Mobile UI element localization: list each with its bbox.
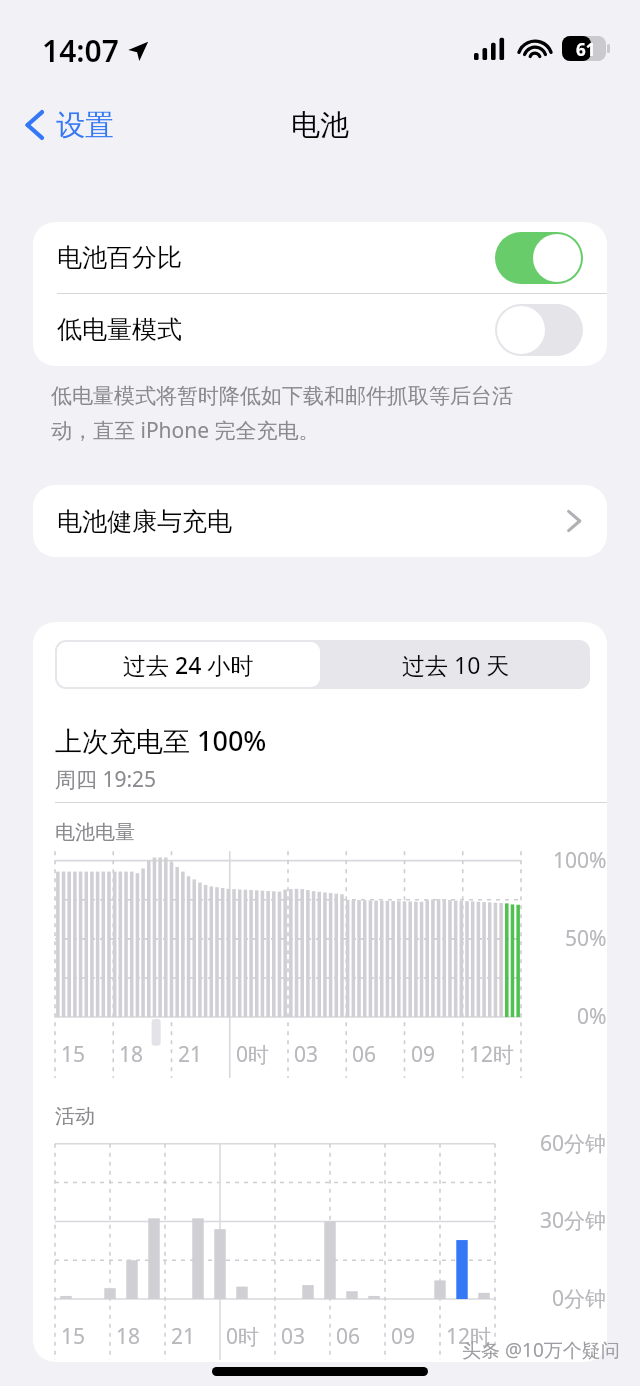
button[interactable]: 低电量模式	[33, 294, 607, 365]
staticText: 12时	[446, 1322, 492, 1351]
staticText: 15	[61, 1322, 86, 1351]
staticText: 过去 10 天	[402, 649, 510, 680]
staticText: 动，直至 iPhone 完全充电。	[51, 416, 320, 445]
staticText: 电池	[291, 107, 349, 144]
staticText: 周四 19:25	[55, 765, 157, 794]
staticText: 0时	[236, 1040, 270, 1069]
staticText: 活动	[55, 1104, 95, 1129]
staticText: 0时	[226, 1322, 260, 1351]
button[interactable]: 过去 10 天	[322, 640, 590, 689]
staticText: 03	[281, 1322, 306, 1351]
staticText: 18	[116, 1322, 141, 1351]
staticText: 09	[411, 1040, 436, 1069]
staticText: 15	[61, 1040, 86, 1069]
staticText: 电池电量	[55, 820, 135, 845]
staticText: 60分钟	[540, 1129, 607, 1158]
staticText: 61	[576, 38, 596, 61]
staticText: 电池百分比	[57, 242, 182, 273]
staticText: 0分钟	[552, 1284, 607, 1313]
staticText: 14:07	[42, 30, 119, 71]
staticText: 06	[336, 1322, 361, 1351]
staticText: 电池健康与充电	[57, 506, 232, 537]
button[interactable]: 过去 24 小时	[57, 642, 320, 687]
staticText: 21	[171, 1322, 196, 1351]
button[interactable]: 电池百分比	[33, 222, 607, 293]
staticText: 21	[178, 1040, 203, 1069]
staticText: 100%	[553, 846, 607, 875]
staticText: 上次充电至 100%	[55, 722, 267, 759]
staticText: 30分钟	[540, 1206, 607, 1235]
button[interactable]: 设置	[18, 95, 120, 155]
staticText: 18	[119, 1040, 144, 1069]
staticText: 50%	[565, 924, 607, 953]
staticText: 12时	[469, 1040, 515, 1069]
staticText: 03	[294, 1040, 319, 1069]
button[interactable]: 电池健康与充电	[33, 485, 607, 557]
staticText: 09	[391, 1322, 416, 1351]
staticText: 低电量模式将暂时降低如下载和邮件抓取等后台活	[51, 383, 513, 409]
staticText: 0%	[577, 1002, 607, 1031]
staticText: 过去 24 小时	[123, 649, 254, 680]
staticText: 低电量模式	[57, 314, 182, 345]
staticText: 设置	[56, 107, 114, 144]
staticText: 06	[352, 1040, 377, 1069]
staticText: 头条 @10万个疑问	[462, 1337, 620, 1363]
